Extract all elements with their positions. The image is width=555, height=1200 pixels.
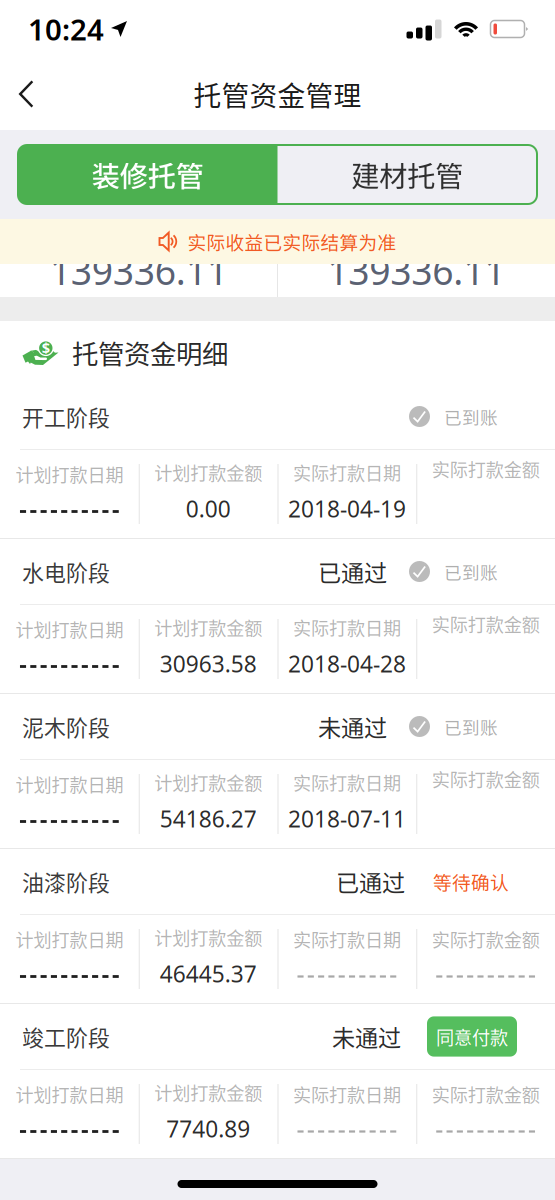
staticText: 2018-07-11 [288,804,406,834]
staticText: 30963.58 [160,649,257,679]
staticText: 计划打款日期 [15,1081,123,1107]
staticText: 实际打款金额 [432,1081,540,1107]
staticText: 54186.27 [160,804,257,834]
staticText: 同意付款 [436,1023,508,1050]
staticText: 实际打款金额 [432,766,540,792]
staticText: 实际打款日期 [293,1081,401,1107]
staticText: 托管资金明细 [72,333,228,372]
staticText: 已到账 [444,714,498,739]
staticText: 实际打款日期 [293,769,401,796]
staticText: 实际打款金额 [432,456,540,482]
staticText: 实际打款金额 [432,611,540,637]
staticText: 实际打款日期 [293,614,401,641]
staticText: $ [42,338,50,357]
staticText: 139336.11 [327,246,505,295]
staticText: 10:24 [28,9,104,48]
staticText: 46445.37 [160,959,257,989]
staticText: 托管资金管理 [193,74,361,114]
staticText: 开工阶段 [22,401,110,432]
staticText: 未通过 [332,1020,401,1053]
staticText: 计划打款日期 [15,616,123,642]
staticText: 已通过 [336,865,405,898]
staticText: 装修托管 [92,154,204,195]
staticText: 建材托管 [351,154,463,195]
button[interactable]: 装修托管 [18,145,277,204]
button[interactable]: 返回 [0,59,52,129]
staticText: 7740.89 [166,1114,250,1144]
staticText: 实际打款日期 [293,459,401,486]
staticText: 计划打款金额 [154,924,262,951]
staticText: 实际打款日期 [293,926,401,952]
staticText: 计划打款金额 [154,459,262,486]
staticText: 计划打款日期 [15,461,123,487]
staticText: 实际打款金额 [432,926,540,952]
staticText: 泥木阶段 [22,711,110,742]
staticText: 竣工阶段 [22,1021,110,1052]
staticText: 未通过 [318,710,387,743]
staticText: 计划打款日期 [15,926,123,952]
staticText: 2018-04-19 [288,494,406,524]
staticText: 计划打款金额 [154,614,262,641]
staticText: 139336.11 [50,246,228,295]
staticText: 计划打款金额 [154,769,262,796]
staticText: 等待确认 [433,868,509,895]
staticText: 计划打款日期 [15,771,123,797]
staticText: 实际收益已实际结算为准 [187,228,396,255]
staticText: 2018-04-28 [288,649,406,679]
staticText: 已通过 [318,555,387,588]
staticText: 0.00 [186,494,231,524]
button[interactable]: 同意付款 [427,1016,517,1057]
staticText: 已到账 [444,404,498,429]
staticText: 油漆阶段 [22,866,110,897]
staticText: 已到账 [444,559,498,584]
staticText: 计划打款金额 [154,1079,262,1106]
staticText: 水电阶段 [22,556,110,587]
button[interactable]: 建材托管 [277,145,537,204]
